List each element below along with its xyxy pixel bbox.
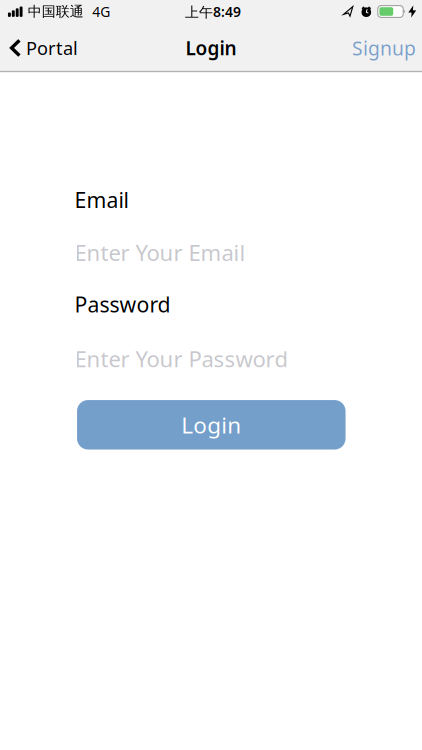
staticText: Portal (26, 36, 78, 60)
button[interactable]: Login (77, 400, 346, 450)
staticText: Enter Your Password (74, 343, 288, 374)
button[interactable]: Portal (10, 36, 78, 60)
staticText: Signup (352, 35, 416, 61)
staticText: Password (74, 290, 170, 319)
staticText: 中国联通 (28, 3, 84, 20)
staticText: Login (181, 409, 241, 440)
staticText: Login (185, 35, 236, 61)
staticText: 上午8:49 (185, 2, 241, 21)
button[interactable]: Signup (352, 35, 416, 61)
staticText: Email (74, 185, 128, 214)
staticText: 4G (92, 2, 110, 21)
staticText: Enter Your Email (74, 237, 245, 267)
